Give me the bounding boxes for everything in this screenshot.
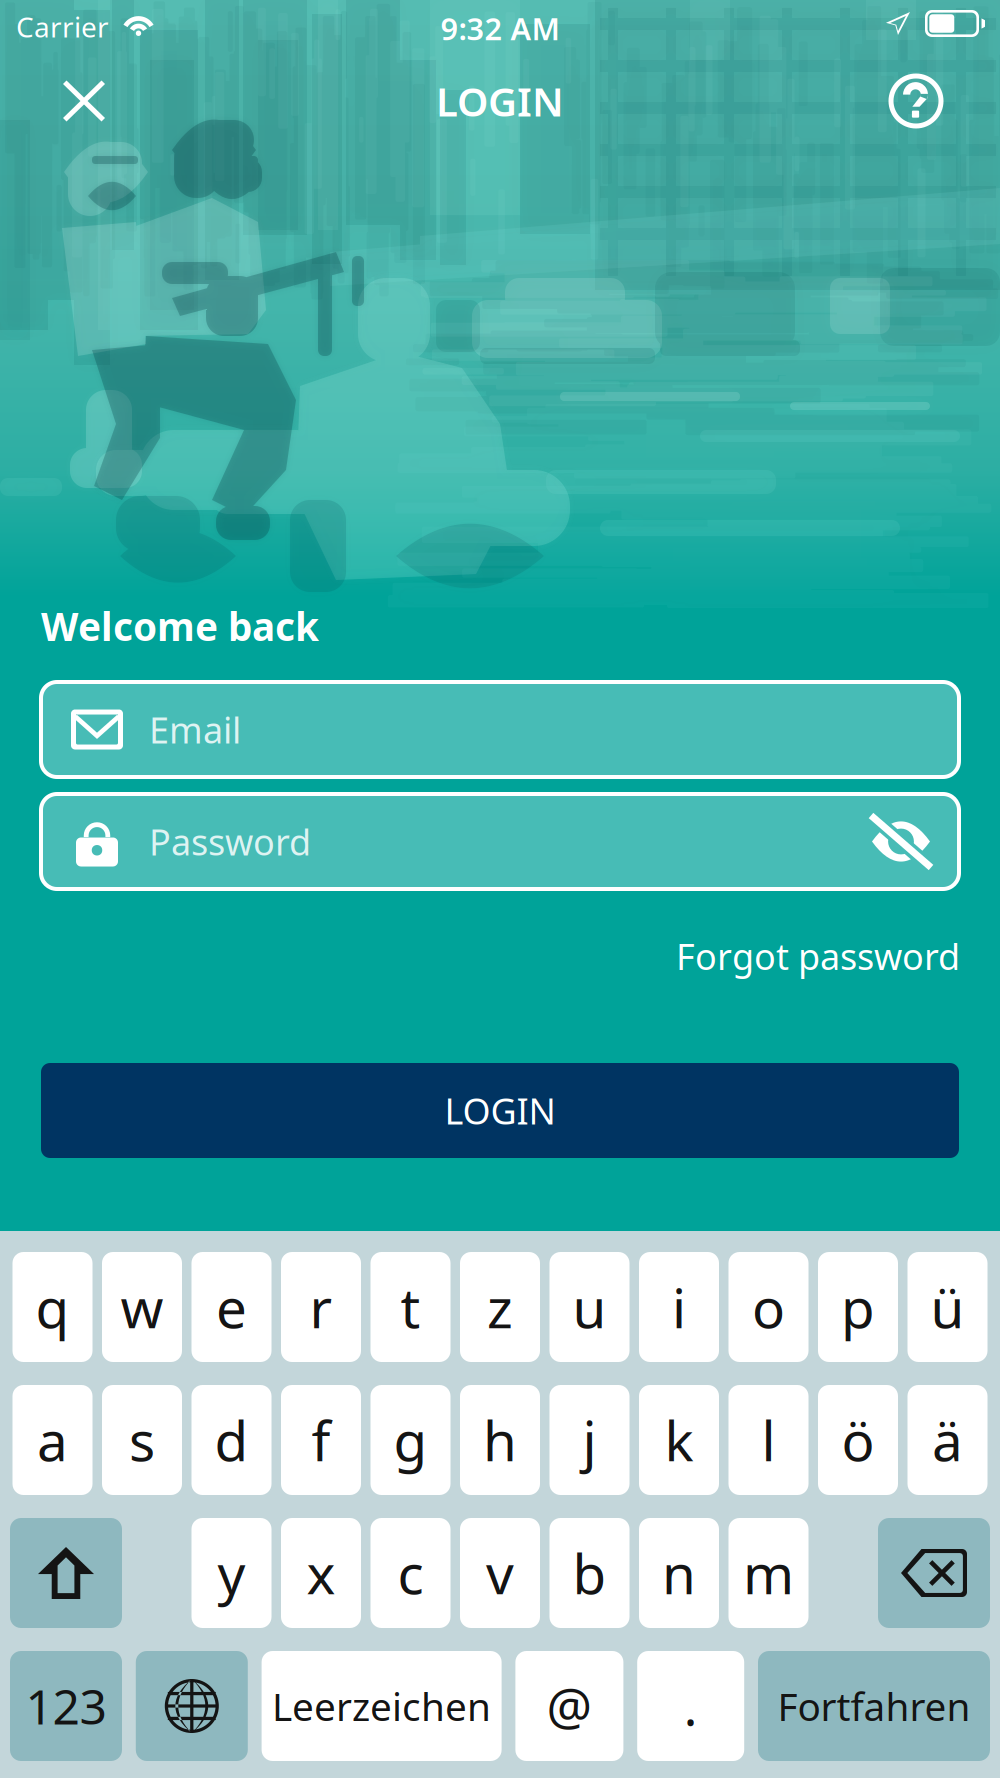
staticText: t [400, 1271, 420, 1343]
button[interactable]: Show password [855, 795, 947, 887]
staticText: k [664, 1404, 693, 1476]
button[interactable]: m [728, 1518, 808, 1628]
button[interactable]: z [460, 1252, 540, 1362]
staticText: l [761, 1404, 775, 1476]
staticText: Carrier [16, 8, 109, 45]
button[interactable]: y [191, 1518, 271, 1628]
button[interactable]: ä [907, 1385, 987, 1495]
button[interactable]: a [12, 1385, 92, 1495]
staticText: e [216, 1271, 247, 1343]
staticText: b [572, 1537, 606, 1609]
button[interactable]: Fortfahren [758, 1651, 990, 1761]
button[interactable]: 123 [10, 1651, 122, 1761]
staticText: m [743, 1537, 794, 1609]
staticText: c [397, 1537, 423, 1609]
button[interactable]: f [281, 1385, 361, 1495]
staticText: z [487, 1271, 513, 1343]
button[interactable]: p [818, 1252, 898, 1362]
staticText: p [841, 1271, 875, 1343]
button[interactable]: s [102, 1385, 182, 1495]
button[interactable]: l [728, 1385, 808, 1495]
button[interactable]: Leerzeichen [262, 1651, 502, 1761]
staticText: y [217, 1537, 245, 1609]
staticText: ö [841, 1404, 874, 1476]
staticText: Email [149, 706, 241, 753]
button[interactable]: Shift [10, 1518, 122, 1628]
staticText: w [120, 1271, 163, 1343]
button[interactable]: r [281, 1252, 361, 1362]
staticText: 123 [25, 1674, 106, 1738]
staticText: x [306, 1537, 335, 1609]
staticText: . [684, 1672, 698, 1740]
button[interactable]: LOGIN [0, 1063, 1000, 1158]
staticText: Leerzeichen [272, 1680, 491, 1732]
button[interactable]: c [370, 1518, 450, 1628]
button[interactable]: g [370, 1385, 450, 1495]
staticText: j [582, 1404, 596, 1476]
staticText: v [486, 1537, 514, 1609]
button[interactable]: i [639, 1252, 719, 1362]
staticText: a [37, 1404, 68, 1476]
staticText: d [214, 1404, 248, 1476]
staticText: Welcome back [41, 600, 319, 652]
button[interactable]: Forgot password [0, 925, 1000, 987]
button[interactable]: Delete [878, 1518, 990, 1628]
button[interactable]: h [460, 1385, 540, 1495]
button[interactable]: q [12, 1252, 92, 1362]
button[interactable]: v [460, 1518, 540, 1628]
button[interactable]: o [728, 1252, 808, 1362]
staticText: ü [930, 1271, 964, 1343]
button[interactable]: Next keyboard [136, 1651, 248, 1761]
button[interactable]: t [370, 1252, 450, 1362]
staticText: n [662, 1537, 696, 1609]
button[interactable]: @ [515, 1651, 623, 1761]
button[interactable]: w [102, 1252, 182, 1362]
staticText: 9:32 AM [440, 8, 559, 49]
staticText: LOGIN [436, 74, 564, 127]
staticText: Password [149, 818, 311, 865]
button[interactable]: j [549, 1385, 629, 1495]
staticText: i [672, 1271, 686, 1343]
staticText: s [129, 1404, 155, 1476]
staticText: Fortfahren [777, 1680, 970, 1732]
staticText: q [35, 1271, 69, 1343]
staticText: @ [546, 1672, 592, 1740]
staticText: g [393, 1404, 427, 1476]
staticText: h [483, 1404, 517, 1476]
button[interactable]: Close [40, 57, 128, 145]
button[interactable]: ö [818, 1385, 898, 1495]
button[interactable]: u [549, 1252, 629, 1362]
staticText: ä [932, 1404, 963, 1476]
staticText: f [311, 1404, 330, 1476]
button[interactable]: x [281, 1518, 361, 1628]
button[interactable]: d [191, 1385, 271, 1495]
button[interactable]: Help [872, 57, 960, 145]
button[interactable]: k [639, 1385, 719, 1495]
button[interactable]: ü [907, 1252, 987, 1362]
staticText: Forgot password [676, 932, 960, 980]
staticText: o [752, 1271, 785, 1343]
staticText: LOGIN [444, 1087, 555, 1134]
staticText: r [309, 1271, 332, 1343]
button[interactable]: e [191, 1252, 271, 1362]
staticText: u [572, 1271, 606, 1343]
button[interactable]: b [549, 1518, 629, 1628]
button[interactable]: . [637, 1651, 744, 1761]
button[interactable]: n [639, 1518, 719, 1628]
